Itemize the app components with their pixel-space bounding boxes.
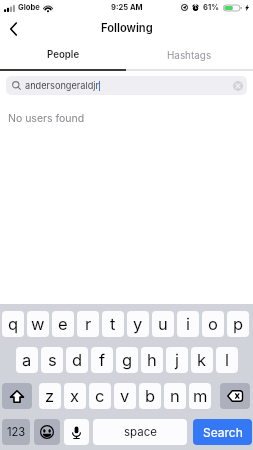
staticText: Following (101, 21, 153, 35)
button[interactable]: v (114, 383, 136, 409)
button[interactable]: Shift (2, 383, 32, 409)
button[interactable]: People (0, 43, 126, 69)
button[interactable]: z (39, 383, 61, 409)
staticText: v (120, 386, 130, 406)
button[interactable]: Dictation (64, 419, 89, 445)
staticText: Hashtags (167, 49, 212, 61)
button[interactable]: b (139, 383, 161, 409)
staticText: 61% (203, 3, 219, 12)
button[interactable]: space (93, 419, 187, 445)
staticText: d (72, 350, 83, 370)
button[interactable]: Emoji (34, 419, 60, 445)
button[interactable]: i (177, 311, 199, 337)
staticText: People (47, 49, 80, 61)
button[interactable]: j (166, 347, 188, 373)
button[interactable]: n (164, 383, 186, 409)
staticText: h (147, 350, 157, 370)
staticText: Globe (18, 3, 40, 12)
staticText: b (145, 386, 156, 406)
staticText: z (45, 386, 55, 406)
button[interactable]: h (141, 347, 163, 373)
staticText: l (225, 350, 229, 370)
staticText: f (99, 350, 106, 370)
staticText: y (133, 314, 143, 334)
staticText: space (124, 425, 157, 439)
button[interactable]: w (27, 311, 49, 337)
staticText: u (158, 314, 168, 334)
staticText: q (8, 314, 19, 334)
button[interactable]: g (116, 347, 138, 373)
button[interactable]: a (16, 347, 38, 373)
staticText: w (31, 314, 45, 334)
button[interactable]: Back (0, 15, 28, 43)
staticText: t (110, 314, 116, 334)
button[interactable]: s (41, 347, 63, 373)
staticText: r (85, 314, 92, 334)
staticText: p (233, 314, 244, 334)
staticText: s (48, 350, 57, 370)
staticText: i (186, 314, 190, 334)
button[interactable]: d (66, 347, 88, 373)
button[interactable]: y (127, 311, 149, 337)
staticText: a (22, 350, 32, 370)
button[interactable]: o (202, 311, 224, 337)
staticText: g (122, 350, 133, 370)
staticText: m (193, 386, 208, 406)
button[interactable]: t (102, 311, 124, 337)
button[interactable]: Search (193, 419, 252, 445)
staticText: c (95, 386, 105, 406)
staticText: k (197, 350, 207, 370)
staticText: 9:25 AM (111, 3, 143, 12)
staticText: n (170, 386, 180, 406)
staticText: o (208, 314, 218, 334)
staticText: x (70, 386, 80, 406)
staticText: Search (203, 425, 243, 440)
button[interactable]: p (227, 311, 249, 337)
button[interactable]: k (191, 347, 213, 373)
button[interactable]: m (189, 383, 211, 409)
button[interactable]: f (91, 347, 113, 373)
staticText: andersongeraldjr (25, 80, 99, 91)
button[interactable]: l (216, 347, 238, 373)
button[interactable]: u (152, 311, 174, 337)
button[interactable]: 123 (2, 419, 30, 445)
staticText: e (58, 314, 68, 334)
staticText: j (175, 350, 179, 370)
button[interactable]: Hashtags (126, 43, 253, 69)
button[interactable]: e (52, 311, 74, 337)
button[interactable]: c (89, 383, 111, 409)
button[interactable]: q (2, 311, 24, 337)
button[interactable]: andersongeraldjr (6, 76, 247, 95)
staticText: No users found (8, 112, 85, 125)
button[interactable]: Clear text (233, 81, 243, 91)
staticText: 123 (7, 425, 26, 439)
button[interactable]: x (64, 383, 86, 409)
button[interactable]: Backspace (220, 383, 250, 409)
button[interactable]: r (77, 311, 99, 337)
